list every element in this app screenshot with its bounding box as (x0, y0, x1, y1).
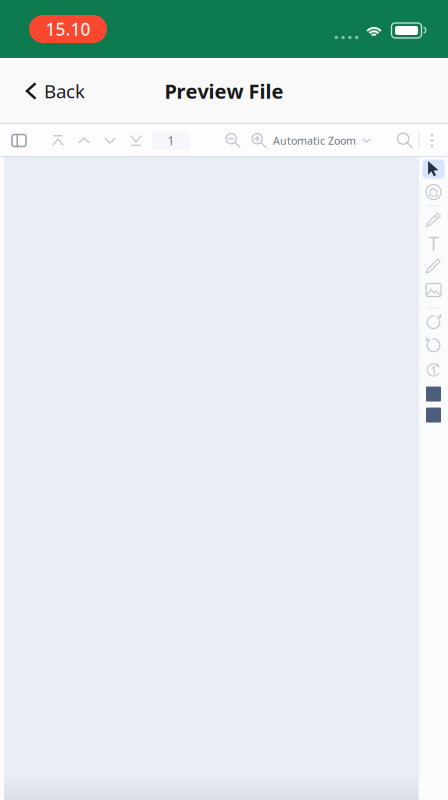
button[interactable]: Redo (419, 310, 448, 334)
button[interactable]: Highlight (419, 208, 448, 232)
button[interactable]: Stamp colour (419, 382, 448, 406)
button[interactable]: Toggle Sidebar (4, 126, 34, 154)
button[interactable]: Undo (419, 333, 448, 357)
staticText: T (428, 230, 439, 256)
button[interactable]: Select (419, 157, 448, 181)
button[interactable]: Add Text (419, 231, 448, 255)
button[interactable]: Back (0, 69, 101, 113)
button[interactable]: Automatic Zoom (273, 127, 371, 153)
button[interactable]: Next Page (97, 126, 123, 154)
staticText: 1 (430, 363, 436, 377)
button[interactable]: Zoom In (246, 126, 272, 154)
button[interactable]: Square colour (419, 403, 448, 427)
button[interactable]: Pan (419, 180, 448, 204)
button[interactable]: Signature (419, 358, 448, 382)
staticText: Back (44, 79, 85, 103)
button[interactable]: Previous Page (71, 126, 97, 154)
staticText: Automatic Zoom (273, 133, 356, 148)
button[interactable]: Draw (419, 254, 448, 278)
button[interactable]: Zoom Out (220, 126, 246, 154)
button[interactable]: Find (392, 126, 418, 154)
button[interactable]: First Page (45, 126, 71, 154)
button[interactable]: Add Image (419, 278, 448, 302)
button[interactable]: Last Page (123, 126, 149, 154)
staticText: 1 (167, 132, 174, 148)
staticText: Preview File (164, 78, 283, 104)
button[interactable]: More Options (421, 126, 443, 154)
staticText: 15.10 (45, 17, 90, 40)
